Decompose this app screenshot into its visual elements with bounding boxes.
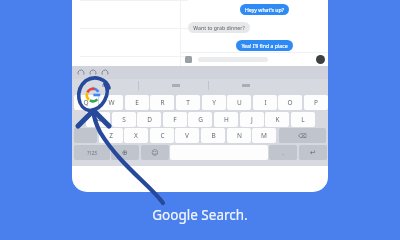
- staticText: ⊕: [122, 149, 128, 157]
- staticText: V: [185, 131, 189, 140]
- staticText: Want to grab dinner?: [193, 24, 245, 31]
- button[interactable]: D: [137, 112, 161, 127]
- button[interactable]: V: [175, 128, 199, 143]
- button[interactable]: L: [291, 112, 315, 127]
- staticText: .: [282, 149, 284, 157]
- button[interactable]: W: [99, 95, 123, 110]
- staticText: X: [134, 131, 138, 140]
- button[interactable]: Numbers: [74, 145, 110, 160]
- staticText: K: [275, 115, 280, 124]
- staticText: M: [261, 131, 267, 140]
- button[interactable]: E: [125, 95, 149, 110]
- button[interactable]: Backspace: [279, 128, 326, 143]
- button[interactable]: N: [227, 128, 251, 143]
- button[interactable]: P: [304, 95, 328, 110]
- staticText: B: [211, 131, 216, 140]
- button[interactable]: Toolbar action: [78, 70, 84, 76]
- staticText: Q: [83, 98, 89, 107]
- staticText: H: [224, 115, 229, 124]
- staticText: W: [108, 98, 115, 107]
- button[interactable]: T: [176, 95, 200, 110]
- staticText: G: [198, 115, 203, 124]
- staticText: R: [160, 98, 165, 107]
- staticText: I: [264, 98, 267, 107]
- button[interactable]: I: [253, 95, 277, 110]
- staticText: U: [237, 98, 242, 107]
- button[interactable]: Heyy what's up?: [245, 6, 284, 13]
- button[interactable]: Want to grab dinner?: [193, 24, 245, 31]
- staticText: S: [122, 115, 126, 124]
- button[interactable]: Yea! I'll find a place: [241, 42, 288, 49]
- button[interactable]: M: [252, 128, 276, 143]
- staticText: ⌫: [298, 132, 307, 139]
- staticText: ☺: [151, 149, 159, 157]
- staticText: Google Search.: [152, 206, 248, 224]
- staticText: ?123: [87, 150, 97, 156]
- staticText: Heyy what's up?: [245, 6, 284, 13]
- staticText: T: [186, 98, 190, 107]
- button[interactable]: R: [150, 95, 174, 110]
- staticText: C: [160, 131, 165, 140]
- button[interactable]: Shift: [74, 128, 97, 143]
- staticText: Y: [212, 98, 216, 107]
- button[interactable]: Toolbar action: [102, 70, 108, 76]
- button[interactable]: G: [188, 112, 212, 127]
- button[interactable]: Toolbar action: [90, 70, 96, 76]
- staticText: N: [237, 131, 242, 140]
- button[interactable]: B: [201, 128, 225, 143]
- button[interactable]: X: [124, 128, 148, 143]
- button[interactable]: Camera: [185, 56, 192, 63]
- button[interactable]: Q: [74, 95, 98, 110]
- button[interactable]: Enter: [299, 145, 327, 160]
- staticText: Yea! I'll find a place: [241, 42, 288, 49]
- button[interactable]: F: [163, 112, 187, 127]
- button[interactable]: Emoji: [141, 145, 169, 160]
- staticText: J: [251, 115, 253, 124]
- button[interactable]: Z: [99, 128, 123, 143]
- staticText: A: [96, 115, 101, 124]
- button[interactable]: C: [150, 128, 174, 143]
- staticText: L: [301, 115, 305, 124]
- button[interactable]: H: [214, 112, 238, 127]
- button[interactable]: Google Search.: [0, 206, 400, 224]
- button[interactable]: U: [227, 95, 251, 110]
- staticText: ↵: [310, 149, 316, 157]
- button[interactable]: Language: [111, 145, 139, 160]
- staticText: D: [147, 115, 152, 124]
- button[interactable]: J: [240, 112, 264, 127]
- button[interactable]: K: [265, 112, 289, 127]
- staticText: P: [314, 98, 318, 107]
- staticText: E: [135, 98, 139, 107]
- staticText: Z: [109, 131, 113, 140]
- button[interactable]: S: [112, 112, 136, 127]
- staticText: O: [287, 98, 293, 107]
- button[interactable]: Send: [316, 55, 325, 64]
- button[interactable]: A: [86, 112, 110, 127]
- staticText: F: [173, 115, 177, 124]
- button[interactable]: Y: [202, 95, 226, 110]
- button[interactable]: O: [278, 95, 302, 110]
